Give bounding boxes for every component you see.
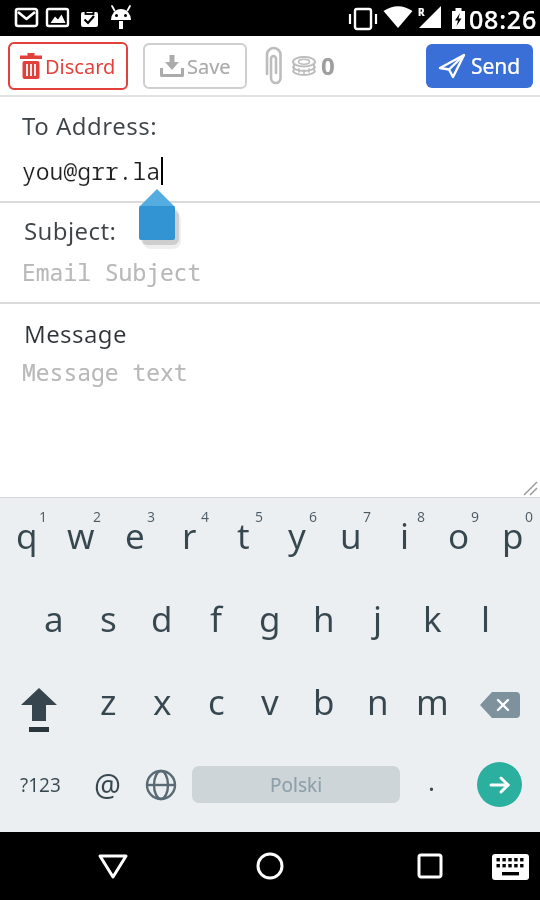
staticText: 0 bbox=[525, 507, 534, 526]
staticText: 0 bbox=[321, 49, 335, 82]
button[interactable]: v bbox=[243, 663, 297, 747]
button[interactable]: b bbox=[297, 663, 351, 747]
staticText: Polski bbox=[270, 772, 323, 798]
button[interactable]: t bbox=[216, 498, 270, 580]
button[interactable]: o bbox=[432, 498, 486, 580]
staticText: To Address: bbox=[22, 109, 158, 142]
button[interactable]: a bbox=[27, 580, 81, 663]
button[interactable]: x bbox=[135, 663, 189, 747]
button[interactable]: z bbox=[81, 663, 135, 747]
staticText: i bbox=[400, 512, 410, 560]
staticText: Message bbox=[24, 317, 127, 350]
staticText: w bbox=[67, 512, 95, 560]
staticText: z bbox=[100, 678, 117, 726]
button[interactable]: r bbox=[162, 498, 216, 580]
button[interactable]: e bbox=[108, 498, 162, 580]
staticText: t bbox=[237, 512, 250, 560]
staticText: l bbox=[481, 595, 491, 643]
staticText: Send bbox=[471, 52, 521, 81]
button[interactable]: k bbox=[405, 580, 459, 663]
button[interactable]: h bbox=[297, 580, 351, 663]
staticText: 9 bbox=[471, 507, 480, 526]
button[interactable]: l bbox=[459, 580, 513, 663]
staticText: m bbox=[416, 678, 449, 726]
staticText: h bbox=[313, 595, 335, 643]
staticText: b bbox=[313, 678, 335, 726]
button[interactable]: c bbox=[189, 663, 243, 747]
staticText: 7 bbox=[363, 507, 372, 526]
staticText: u bbox=[340, 512, 362, 560]
button[interactable]: n bbox=[351, 663, 405, 747]
staticText: Save bbox=[187, 53, 231, 80]
button[interactable]: d bbox=[135, 580, 189, 663]
button[interactable] bbox=[360, 832, 540, 900]
staticText: 4 bbox=[201, 507, 210, 526]
staticText: y bbox=[288, 512, 306, 560]
staticText: @ bbox=[94, 764, 121, 805]
button[interactable]: Send bbox=[426, 44, 533, 88]
button[interactable] bbox=[263, 46, 284, 86]
button[interactable] bbox=[0, 663, 81, 747]
staticText: r bbox=[182, 512, 197, 560]
button[interactable]: w bbox=[54, 498, 108, 580]
button[interactable]: f bbox=[189, 580, 243, 663]
button[interactable]: Discard bbox=[8, 42, 128, 90]
staticText: g bbox=[259, 595, 281, 643]
staticText: v bbox=[261, 678, 279, 726]
staticText: x bbox=[153, 678, 172, 726]
staticText: c bbox=[208, 678, 225, 726]
staticText: s bbox=[100, 595, 117, 643]
staticText: 3 bbox=[147, 507, 156, 526]
staticText: R bbox=[418, 5, 425, 19]
staticText: n bbox=[367, 678, 389, 726]
staticText: Subject: bbox=[24, 214, 117, 247]
staticText: 6 bbox=[309, 507, 318, 526]
staticText: f bbox=[210, 595, 223, 643]
staticText: j bbox=[373, 595, 383, 643]
button[interactable]: g bbox=[243, 580, 297, 663]
staticText: p bbox=[502, 512, 524, 560]
button[interactable]: y bbox=[270, 498, 324, 580]
button[interactable] bbox=[458, 747, 540, 832]
button[interactable]: m bbox=[405, 663, 459, 747]
staticText: ?123 bbox=[20, 772, 61, 798]
button[interactable] bbox=[134, 747, 188, 832]
button[interactable]: q bbox=[0, 498, 54, 580]
button[interactable] bbox=[180, 832, 360, 900]
staticText: o bbox=[448, 512, 470, 560]
staticText: Message text bbox=[22, 356, 188, 387]
button[interactable]: ?123 bbox=[0, 747, 80, 832]
button[interactable]: u bbox=[324, 498, 378, 580]
staticText: 08:26 bbox=[469, 2, 538, 36]
staticText: 8 bbox=[417, 507, 426, 526]
button[interactable]: s bbox=[81, 580, 135, 663]
button[interactable] bbox=[459, 663, 540, 747]
staticText: k bbox=[423, 595, 442, 643]
button[interactable] bbox=[0, 832, 180, 900]
button[interactable]: Save bbox=[143, 43, 247, 89]
button[interactable]: p bbox=[486, 498, 540, 580]
staticText: Discard bbox=[45, 53, 116, 80]
staticText: . bbox=[428, 763, 435, 798]
staticText: 1 bbox=[39, 507, 48, 526]
button[interactable]: . bbox=[404, 747, 458, 832]
button[interactable]: i bbox=[378, 498, 432, 580]
staticText: 2 bbox=[93, 507, 102, 526]
button[interactable]: j bbox=[351, 580, 405, 663]
staticText: Email Subject bbox=[22, 256, 202, 287]
staticText: q bbox=[16, 512, 38, 560]
button[interactable]: @ bbox=[80, 747, 134, 832]
button[interactable]: Polski bbox=[188, 747, 404, 832]
staticText: 5 bbox=[255, 507, 264, 526]
staticText: a bbox=[44, 595, 64, 643]
staticText: e bbox=[125, 512, 145, 560]
staticText: you@grr.la bbox=[22, 155, 161, 186]
staticText: d bbox=[151, 595, 173, 643]
